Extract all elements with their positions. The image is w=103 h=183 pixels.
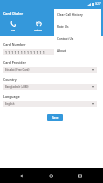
- button[interactable]: Save: [47, 114, 63, 121]
- button[interactable]: Call: [0, 21, 25, 35]
- button[interactable]: Bangladesh (+880): [3, 84, 97, 90]
- staticText: Card Provider: [3, 60, 26, 65]
- button[interactable]: About: [54, 45, 101, 56]
- button[interactable]: English: [3, 101, 97, 107]
- staticText: Clear Call History: [57, 13, 83, 17]
- staticText: 3:27: [95, 2, 101, 6]
- staticText: Etisalat (Free Card): [5, 68, 30, 72]
- staticText: Call: [11, 29, 16, 32]
- button[interactable]: Etisalat (Free Card): [3, 67, 97, 73]
- button[interactable]: 1111111111111: [3, 49, 97, 55]
- button[interactable]: Clear Call History: [54, 9, 101, 21]
- staticText: Bangladesh (+880): [5, 85, 29, 89]
- staticText: Save: [52, 116, 59, 120]
- staticText: About: [57, 49, 67, 53]
- staticText: Contact Us: [57, 37, 74, 41]
- staticText: English: [5, 102, 15, 106]
- staticText: 1111111111111: [5, 50, 46, 55]
- staticText: Country: [3, 77, 17, 82]
- button[interactable]: Contact Us: [54, 33, 101, 45]
- staticText: Card Number: [3, 42, 26, 47]
- staticText: History: [34, 29, 43, 32]
- button[interactable]: Rate Us: [54, 21, 101, 33]
- staticText: Card Dialer: [3, 11, 24, 16]
- staticText: Language: [3, 94, 20, 99]
- button[interactable]: History: [25, 21, 51, 35]
- staticText: Rate Us: [57, 25, 69, 29]
